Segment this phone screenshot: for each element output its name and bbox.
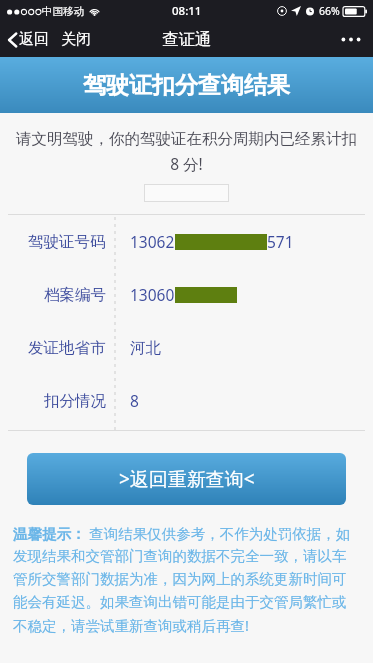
- button[interactable]: >返回重新查询<: [27, 453, 346, 505]
- staticText: 扣分情况: [44, 391, 106, 411]
- staticText: 档案编号: [44, 285, 106, 305]
- button[interactable]: 发证地省市: [0, 321, 373, 374]
- staticText: 66%: [319, 4, 340, 18]
- button[interactable]: 返回: [0, 26, 57, 53]
- staticText: 13062: [130, 231, 175, 252]
- button[interactable]: 关闭: [57, 26, 95, 53]
- button[interactable]: 驾驶证号码: [0, 215, 373, 268]
- staticText: 驾驶证号码: [28, 232, 106, 252]
- staticText: 查证通: [162, 29, 212, 50]
- staticText: 温馨提示： 查询结果仅供参考，不作为处罚依据，如发现结果和交管部门查询的数据不完…: [13, 523, 360, 635]
- staticText: 关闭: [61, 30, 91, 49]
- staticText: 571: [267, 231, 294, 252]
- staticText: 河北: [130, 338, 161, 358]
- button[interactable]: 扣分情况: [0, 374, 373, 427]
- button[interactable]: More options: [329, 29, 373, 50]
- staticText: 8: [130, 390, 139, 411]
- staticText: 发证地省市: [28, 338, 106, 358]
- staticText: 返回: [19, 30, 49, 49]
- staticText: 中国移动: [42, 5, 84, 18]
- staticText: 08:11: [172, 3, 202, 19]
- button[interactable]: 档案编号: [0, 268, 373, 321]
- staticText: 13060: [130, 284, 175, 305]
- staticText: >返回重新查询<: [119, 466, 255, 492]
- staticText: 请文明驾驶，你的驾驶证在积分周期内已经累计扣 8 分!: [14, 127, 359, 174]
- staticText: 驾驶证扣分查询结果: [83, 71, 290, 100]
